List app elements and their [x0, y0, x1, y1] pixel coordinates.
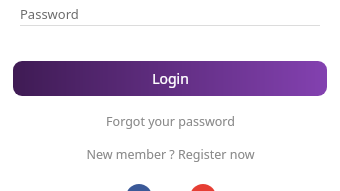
staticText: Login	[152, 69, 189, 88]
staticText: New member ? Register now	[86, 146, 255, 163]
button[interactable]: Login	[13, 61, 327, 96]
button[interactable]: Forgot your password	[0, 111, 340, 131]
staticText: Password	[20, 5, 79, 23]
staticText: Forgot your password	[106, 113, 235, 130]
button[interactable]: Sign in with Google	[190, 184, 216, 191]
button[interactable]: Sign in with Facebook	[126, 184, 152, 191]
button[interactable]: New member ? Register now	[0, 144, 340, 164]
